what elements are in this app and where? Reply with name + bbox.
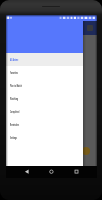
staticText: Watching xyxy=(10,97,18,101)
button[interactable]: Settings xyxy=(6,131,83,144)
button[interactable]: Home xyxy=(45,166,58,178)
staticText: Reminders xyxy=(10,123,20,127)
button[interactable]: Back xyxy=(20,166,33,178)
staticText: All Anime xyxy=(10,58,18,62)
button[interactable]: Recent apps xyxy=(70,166,83,178)
button[interactable]: Reminders xyxy=(6,118,83,131)
staticText: Settings xyxy=(10,136,18,140)
button[interactable]: Add anime xyxy=(82,147,90,155)
button[interactable]: All Anime xyxy=(6,53,83,66)
button[interactable]: Watching xyxy=(6,92,83,105)
staticText: Completed xyxy=(10,110,20,114)
staticText: Favorites xyxy=(10,71,18,75)
staticText: Plan to Watch xyxy=(10,84,22,88)
button[interactable]: Completed xyxy=(6,105,83,118)
button[interactable]: Favorites xyxy=(6,66,83,79)
button[interactable]: Plan to Watch xyxy=(6,79,83,92)
